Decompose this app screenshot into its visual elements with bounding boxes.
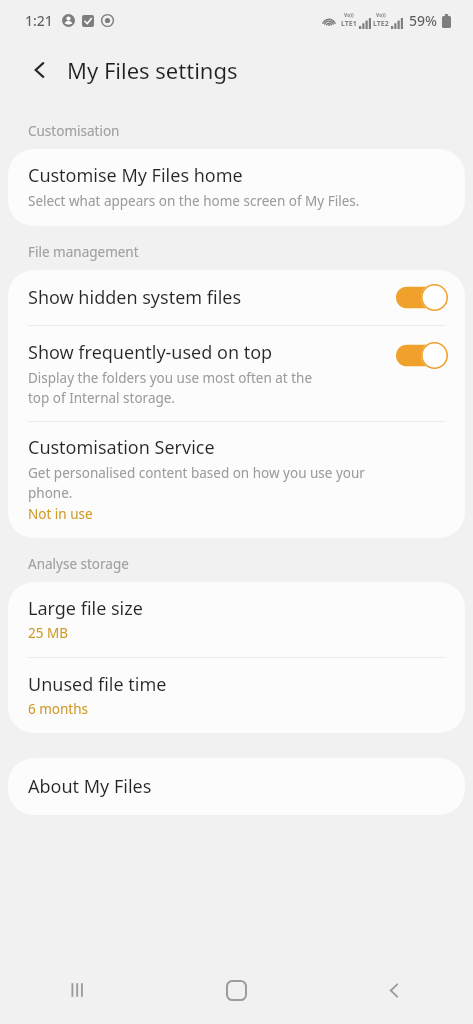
staticText: My Files settings (67, 55, 238, 85)
staticText: 59% (409, 11, 437, 30)
button[interactable]: Home (157, 956, 315, 1024)
staticText: Show frequently-used on top (28, 340, 273, 365)
staticText: Show hidden system files (28, 285, 242, 310)
staticText: About My Files (28, 774, 152, 799)
staticText: Customise My Files home (28, 163, 243, 188)
button[interactable]: Large file size (8, 582, 465, 657)
staticText: Vo)) (344, 12, 354, 19)
staticText: Not in use (28, 505, 93, 523)
staticText: LTE1 (341, 19, 357, 29)
staticText: Customisation (28, 122, 120, 140)
staticText: File management (28, 243, 139, 261)
button[interactable]: Show frequently-used on top (8, 326, 465, 421)
staticText: Select what appears on the home screen o… (28, 192, 360, 210)
button[interactable]: Unused file time (8, 658, 465, 733)
button[interactable]: Show hidden system files (396, 284, 448, 311)
button[interactable]: Show hidden system files (8, 270, 465, 325)
staticText: Customisation Service (28, 435, 215, 460)
button[interactable]: Customisation Service (8, 422, 465, 538)
button[interactable]: Back (315, 956, 473, 1024)
button[interactable]: About My Files (8, 758, 465, 815)
staticText: Display the folders you use most often a… (28, 369, 313, 407)
staticText: Large file size (28, 596, 143, 621)
staticText: 6 months (28, 700, 89, 718)
staticText: 1:21 (25, 11, 53, 30)
staticText: Unused file time (28, 672, 167, 697)
staticText: Vo)) (376, 12, 386, 19)
staticText: 25 MB (28, 624, 68, 642)
staticText: Get personalised content based on how yo… (28, 464, 365, 502)
button[interactable]: Recents (0, 956, 157, 1024)
staticText: LTE2 (373, 19, 389, 29)
staticText: Analyse storage (28, 555, 129, 573)
button[interactable]: Show frequently-used on top (396, 342, 448, 369)
button[interactable]: Back (22, 52, 58, 88)
button[interactable]: Customise My Files home (8, 149, 465, 226)
